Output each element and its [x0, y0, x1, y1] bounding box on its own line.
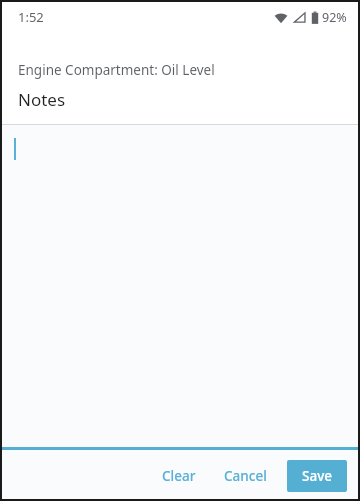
other: Battery 92 percent — [311, 11, 319, 25]
button[interactable] — [0, 125, 360, 447]
button[interactable]: Clear — [152, 459, 206, 493]
button[interactable]: Cancel — [214, 459, 277, 493]
button[interactable]: Save — [287, 460, 347, 492]
other: Wi-Fi — [274, 11, 288, 25]
staticText: 1:52 — [18, 8, 44, 26]
other: Mobile signal — [293, 11, 306, 24]
staticText: 92% — [322, 9, 347, 26]
staticText: Cancel — [224, 467, 267, 485]
staticText: Clear — [162, 467, 196, 485]
staticText: Save — [302, 467, 333, 485]
staticText: Engine Compartment: Oil Level — [18, 61, 215, 79]
staticText: Notes — [18, 88, 66, 111]
